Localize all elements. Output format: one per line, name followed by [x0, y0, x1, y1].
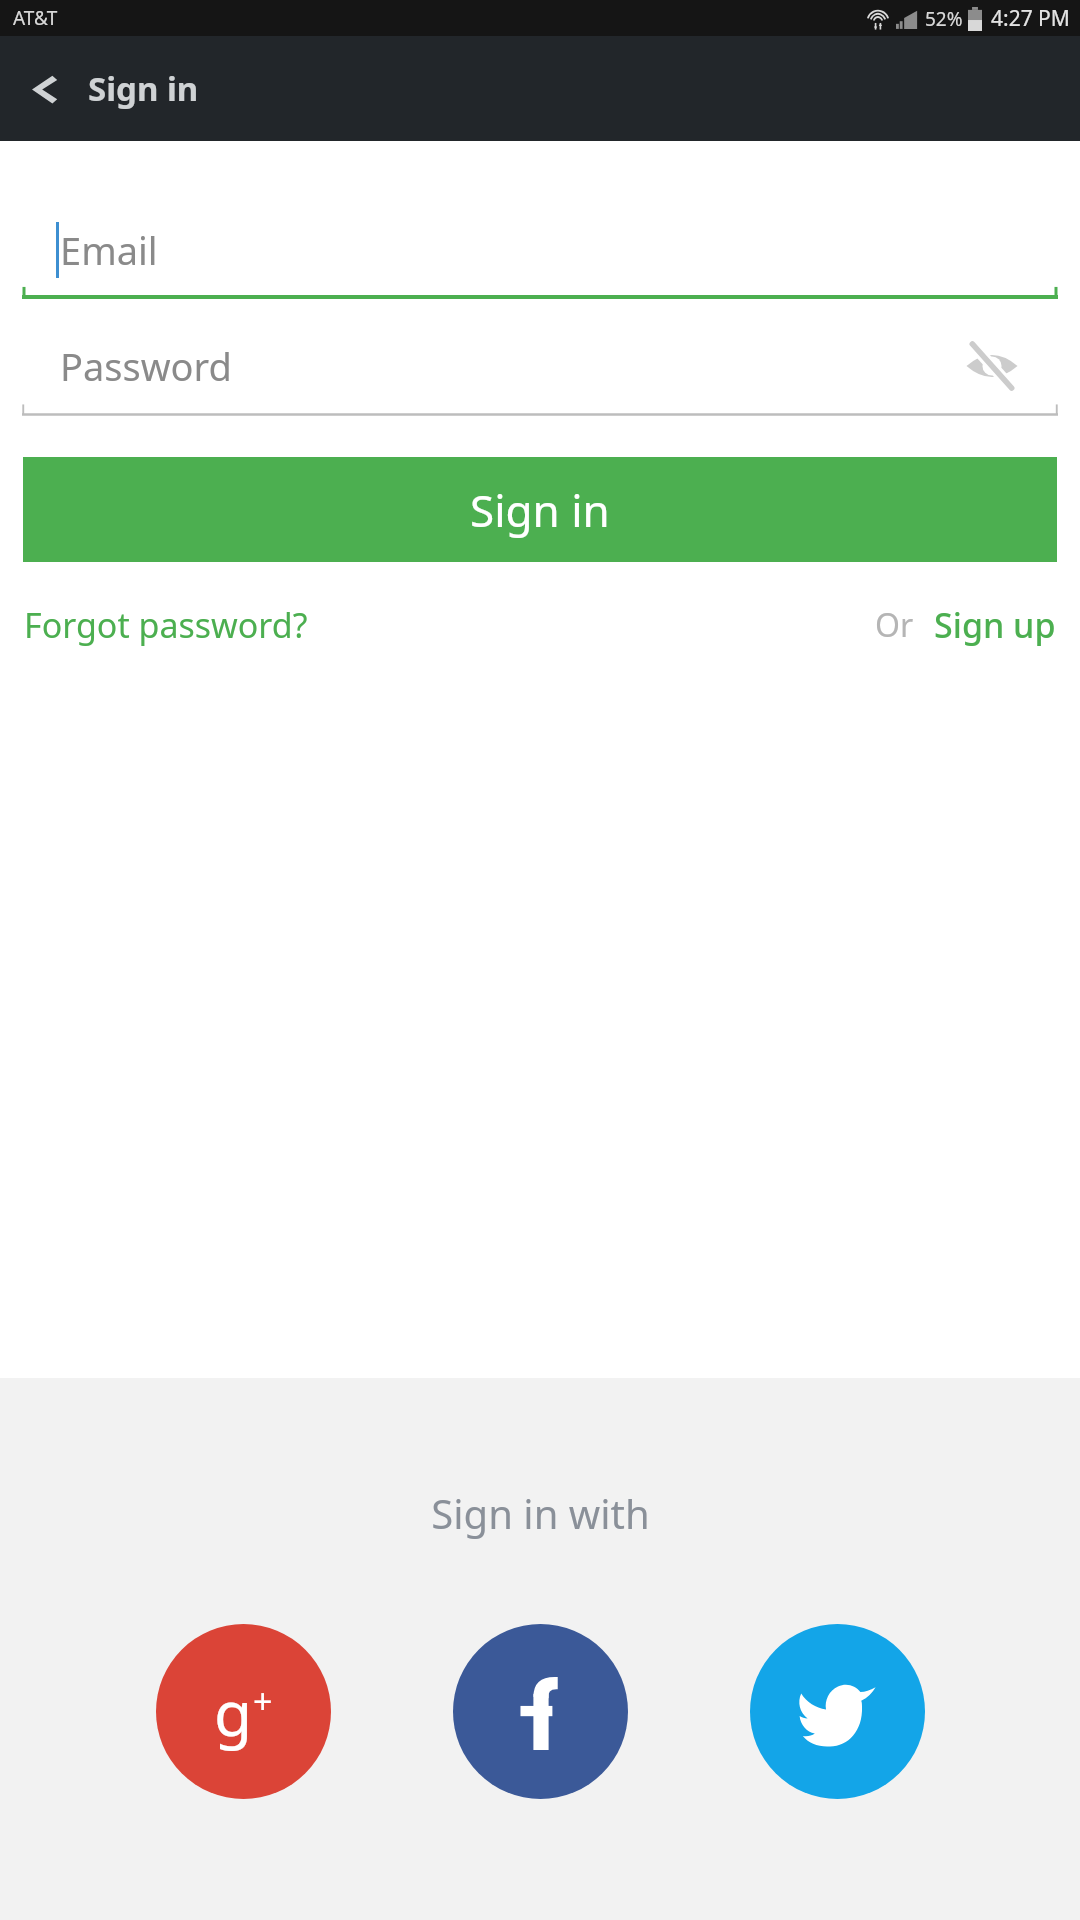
staticText: Or	[875, 603, 914, 647]
button[interactable]: Sign in with Twitter	[750, 1624, 925, 1799]
staticText: Sign in with	[431, 1486, 650, 1540]
staticText: Sign in	[470, 480, 610, 540]
staticText: 52%	[925, 6, 963, 32]
button[interactable]: Forgot password?	[20, 594, 312, 656]
button[interactable]: Sign up	[930, 594, 1060, 656]
staticText: Email	[60, 224, 158, 276]
staticText: g	[214, 1670, 253, 1754]
staticText: Sign up	[934, 602, 1056, 648]
button[interactable]: Password	[22, 329, 1058, 417]
button[interactable]: Show password	[960, 334, 1024, 398]
button[interactable]: Back	[0, 45, 88, 133]
staticText: AT&T	[13, 5, 58, 31]
staticText: +	[253, 1678, 273, 1724]
staticText: Sign in	[88, 66, 199, 111]
staticText: Forgot password?	[24, 602, 308, 648]
button[interactable]: Sign in with Google	[156, 1624, 331, 1799]
button[interactable]: Sign in with Facebook	[453, 1624, 628, 1799]
staticText: Password	[60, 340, 232, 392]
button[interactable]: Sign in	[23, 457, 1057, 562]
button[interactable]: Email	[22, 213, 1058, 301]
staticText: 4:27 PM	[991, 4, 1070, 33]
